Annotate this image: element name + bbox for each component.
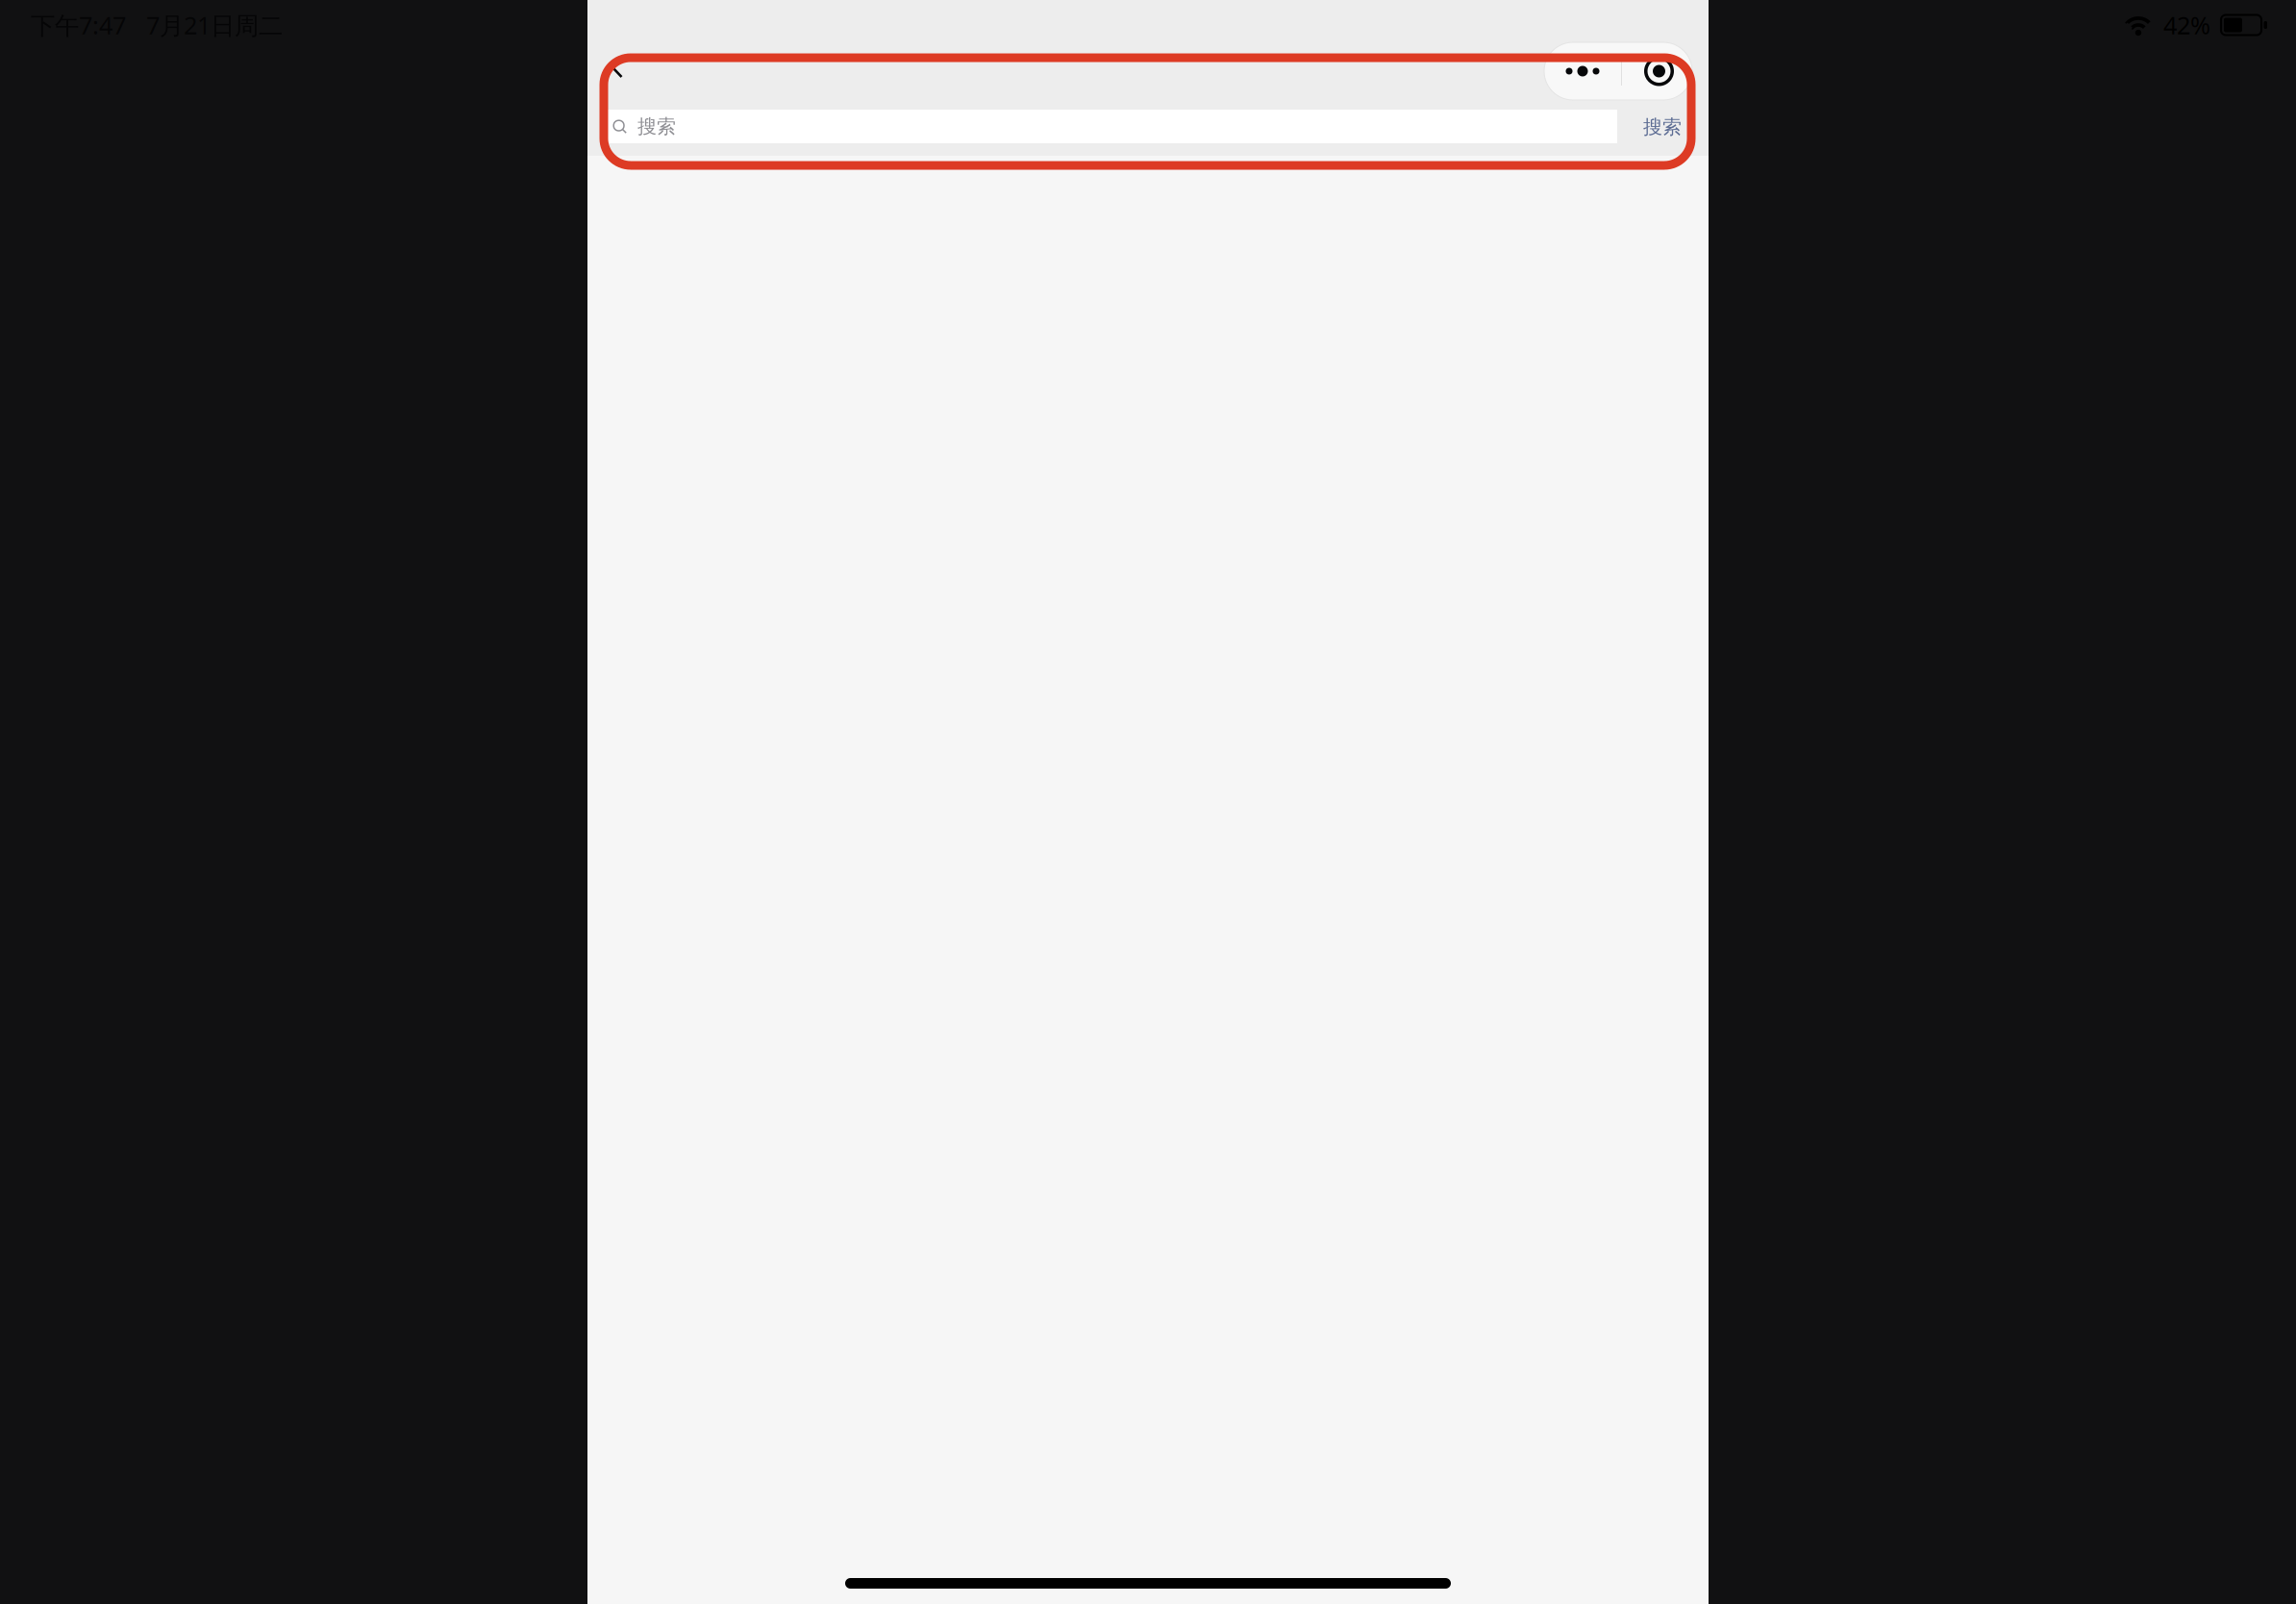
button[interactable]: 返回 [594,44,640,90]
staticText: 搜索 [637,115,676,138]
button[interactable]: 搜索 [605,110,1617,143]
button[interactable]: 更多 [1544,42,1621,100]
staticText: 搜索 [1643,115,1682,139]
staticText: 42% [2163,9,2210,41]
staticText: 下午7:47 7月21日周二 [31,9,283,41]
button[interactable]: 搜索 [1622,106,1703,148]
button[interactable]: 关闭小程序 [1621,42,1697,100]
